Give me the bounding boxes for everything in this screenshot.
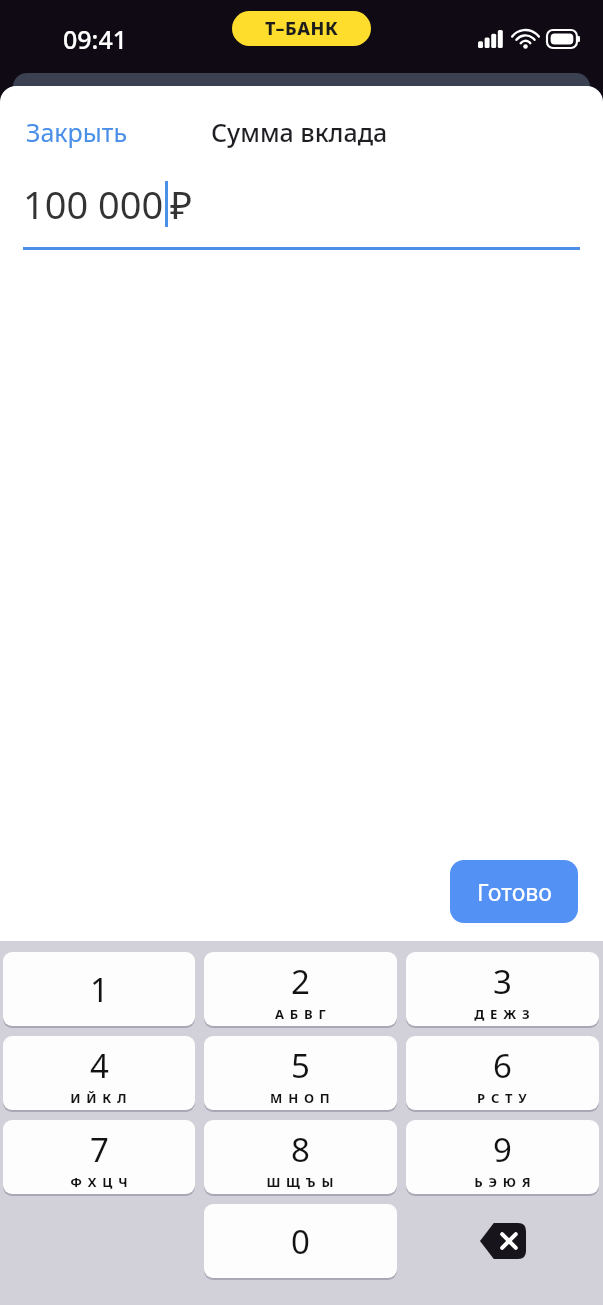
button[interactable]: 5 [204,1036,397,1110]
staticText: 9 [493,1127,512,1172]
button[interactable]: 6 [406,1036,599,1110]
staticText: 5 [291,1043,310,1088]
button[interactable]: Закрыть [0,107,144,157]
staticText: Р С Т У [477,1089,528,1107]
button[interactable]: 7 [3,1120,195,1194]
staticText: 6 [493,1043,512,1088]
staticText: Готово [477,876,552,907]
staticText: 1 [90,967,109,1012]
staticText: Ф Х Ц Ч [70,1173,129,1191]
button[interactable]: 4 [3,1036,195,1110]
staticText: 4 [90,1043,109,1088]
staticText: 09:41 [63,22,128,56]
staticText: ₽ [170,178,193,230]
staticText: Сумма вклада [211,115,388,149]
button[interactable]: 1 [3,952,195,1026]
staticText: 3 [493,959,512,1004]
button[interactable]: 9 [406,1120,599,1194]
staticText: Закрыть [26,115,128,149]
staticText: Ш Щ Ъ Ы [266,1173,335,1191]
button[interactable]: 3 [406,952,599,1026]
staticText: 0 [291,1219,310,1264]
button[interactable]: 8 [204,1120,397,1194]
staticText: М Н О П [270,1089,331,1107]
button[interactable]: 0 [204,1204,397,1278]
staticText: Д Е Ж З [474,1005,531,1023]
staticText: 2 [291,959,310,1004]
staticText: Ь Э Ю Я [474,1173,532,1191]
button[interactable]: 2 [204,952,397,1026]
staticText: А Б В Г [275,1005,327,1023]
staticText: 8 [291,1127,310,1172]
staticText: 7 [90,1127,109,1172]
staticText: И Й К Л [70,1089,128,1107]
staticText: 100 000 [23,178,164,230]
button[interactable]: Backspace [406,1204,599,1278]
button[interactable]: Готово [450,860,578,923]
staticText: Т–БАНК [265,16,339,41]
